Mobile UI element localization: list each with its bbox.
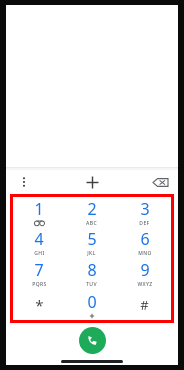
button[interactable]: 6 [118, 227, 171, 258]
staticText: 1 [34, 198, 44, 220]
staticText: 8 [87, 259, 97, 281]
button[interactable]: 2 [65, 197, 118, 227]
staticText: # [140, 296, 149, 314]
button[interactable]: 7 [13, 258, 65, 289]
button[interactable]: 8 [65, 258, 118, 289]
staticText: 9 [140, 259, 150, 281]
button[interactable]: Call [79, 327, 106, 354]
staticText: 4 [34, 228, 44, 250]
button[interactable]: Backspace [149, 171, 171, 193]
button[interactable]: 1 [13, 197, 65, 227]
button[interactable]: 4 [13, 227, 65, 258]
staticText: MNO [138, 250, 152, 257]
staticText: WXYZ [137, 281, 153, 288]
button[interactable]: Add [80, 170, 104, 194]
staticText: ABC [86, 220, 97, 227]
staticText: 6 [140, 228, 150, 250]
staticText: PQRS [32, 281, 47, 288]
staticText: GHI [34, 250, 45, 257]
staticText: JKL [87, 250, 96, 257]
staticText: * [35, 295, 44, 315]
button[interactable]: 0 [65, 289, 118, 320]
staticText: 0 [87, 291, 97, 313]
button[interactable]: * [13, 289, 65, 320]
staticText: 5 [87, 228, 97, 250]
button[interactable]: 3 [118, 197, 171, 227]
staticText: 3 [140, 198, 150, 220]
button[interactable]: 5 [65, 227, 118, 258]
button[interactable]: 9 [118, 258, 171, 289]
staticText: DEF [139, 220, 150, 227]
button[interactable]: # [118, 289, 171, 320]
button[interactable]: More options [14, 172, 34, 192]
staticText: TUV [86, 281, 97, 288]
staticText: 7 [34, 259, 44, 281]
staticText: 2 [87, 198, 97, 220]
